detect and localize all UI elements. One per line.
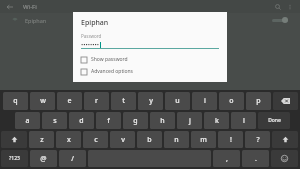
button[interactable]: Done bbox=[258, 112, 290, 129]
button[interactable]: j bbox=[177, 112, 202, 129]
button[interactable]: s bbox=[42, 112, 67, 129]
button[interactable]: Advanced options bbox=[81, 66, 219, 77]
staticText: p bbox=[256, 96, 261, 106]
staticText: h bbox=[160, 116, 165, 126]
button[interactable]: m bbox=[191, 131, 216, 148]
button[interactable]: y bbox=[138, 92, 163, 110]
button[interactable]: Back bbox=[5, 2, 15, 12]
button[interactable]: Epiphan bbox=[12, 13, 288, 27]
staticText: b bbox=[147, 135, 152, 145]
staticText: n bbox=[174, 135, 179, 145]
button[interactable]: r bbox=[84, 92, 109, 110]
staticText: / bbox=[71, 154, 74, 164]
staticText: Epiphan bbox=[81, 18, 109, 28]
staticText: c bbox=[94, 135, 98, 145]
staticText: t bbox=[122, 96, 125, 106]
button[interactable]: t bbox=[111, 92, 136, 110]
staticText: z bbox=[40, 135, 44, 145]
button[interactable]: Wi-Fi toggle bbox=[272, 16, 288, 24]
button[interactable]: @ bbox=[30, 150, 57, 167]
staticText: a bbox=[25, 116, 30, 126]
button[interactable]: ! bbox=[218, 131, 243, 148]
button[interactable]: o bbox=[219, 92, 244, 110]
staticText: s bbox=[53, 116, 57, 126]
staticText: q bbox=[13, 96, 18, 106]
staticText: Advanced options bbox=[91, 68, 134, 75]
button[interactable]: x bbox=[56, 131, 81, 148]
button[interactable]: ?123 bbox=[1, 150, 28, 167]
button[interactable]: a bbox=[15, 112, 40, 129]
staticText: f bbox=[107, 116, 110, 126]
staticText: i bbox=[204, 96, 206, 106]
button[interactable]: p bbox=[246, 92, 271, 110]
staticText: d bbox=[79, 116, 84, 126]
button[interactable]: i bbox=[192, 92, 217, 110]
button[interactable] bbox=[1, 131, 27, 148]
button[interactable]: n bbox=[164, 131, 189, 148]
staticText: ! bbox=[230, 135, 232, 145]
staticText: . bbox=[255, 154, 257, 164]
staticText: ? bbox=[256, 135, 260, 145]
staticText: y bbox=[149, 96, 153, 106]
button[interactable]: . bbox=[242, 150, 269, 167]
staticText: @ bbox=[40, 154, 47, 164]
button[interactable]: z bbox=[29, 131, 54, 148]
button[interactable] bbox=[271, 150, 298, 167]
staticText: r bbox=[95, 96, 98, 106]
staticText: Show password bbox=[91, 56, 128, 63]
button[interactable]: f bbox=[96, 112, 121, 129]
staticText: Password bbox=[81, 33, 102, 39]
button[interactable]: Show password bbox=[81, 54, 219, 65]
button[interactable] bbox=[272, 131, 298, 148]
button[interactable]: e bbox=[57, 92, 82, 110]
button[interactable]: b bbox=[137, 131, 162, 148]
staticText: Done bbox=[268, 117, 281, 124]
staticText: k bbox=[215, 116, 219, 126]
button[interactable]: l bbox=[231, 112, 256, 129]
staticText: x bbox=[67, 135, 71, 145]
button[interactable]: h bbox=[150, 112, 175, 129]
button[interactable] bbox=[273, 92, 298, 110]
staticText: e bbox=[67, 96, 72, 106]
button[interactable]: More options bbox=[285, 2, 295, 12]
staticText: Epiphan bbox=[25, 17, 47, 24]
button[interactable]: Search bbox=[273, 2, 283, 12]
staticText: l bbox=[243, 116, 245, 126]
button[interactable]: , bbox=[213, 150, 240, 167]
staticText: g bbox=[133, 116, 138, 126]
button[interactable]: d bbox=[69, 112, 94, 129]
staticText: o bbox=[229, 96, 234, 106]
button[interactable]: / bbox=[59, 150, 86, 167]
button[interactable]: q bbox=[3, 92, 28, 110]
button[interactable]: c bbox=[83, 131, 108, 148]
staticText: m bbox=[200, 135, 207, 145]
button[interactable]: ? bbox=[245, 131, 270, 148]
staticText: j bbox=[189, 116, 191, 126]
staticText: •••••••• bbox=[81, 41, 100, 48]
button[interactable]: u bbox=[165, 92, 190, 110]
staticText: Wi‑Fi bbox=[23, 3, 37, 11]
staticText: ?123 bbox=[9, 155, 20, 162]
staticText: , bbox=[226, 154, 228, 164]
button[interactable]: v bbox=[110, 131, 135, 148]
button[interactable]: k bbox=[204, 112, 229, 129]
staticText: v bbox=[121, 135, 125, 145]
button[interactable]: g bbox=[123, 112, 148, 129]
button[interactable]: w bbox=[30, 92, 55, 110]
staticText: u bbox=[175, 96, 180, 106]
staticText: w bbox=[40, 96, 46, 106]
